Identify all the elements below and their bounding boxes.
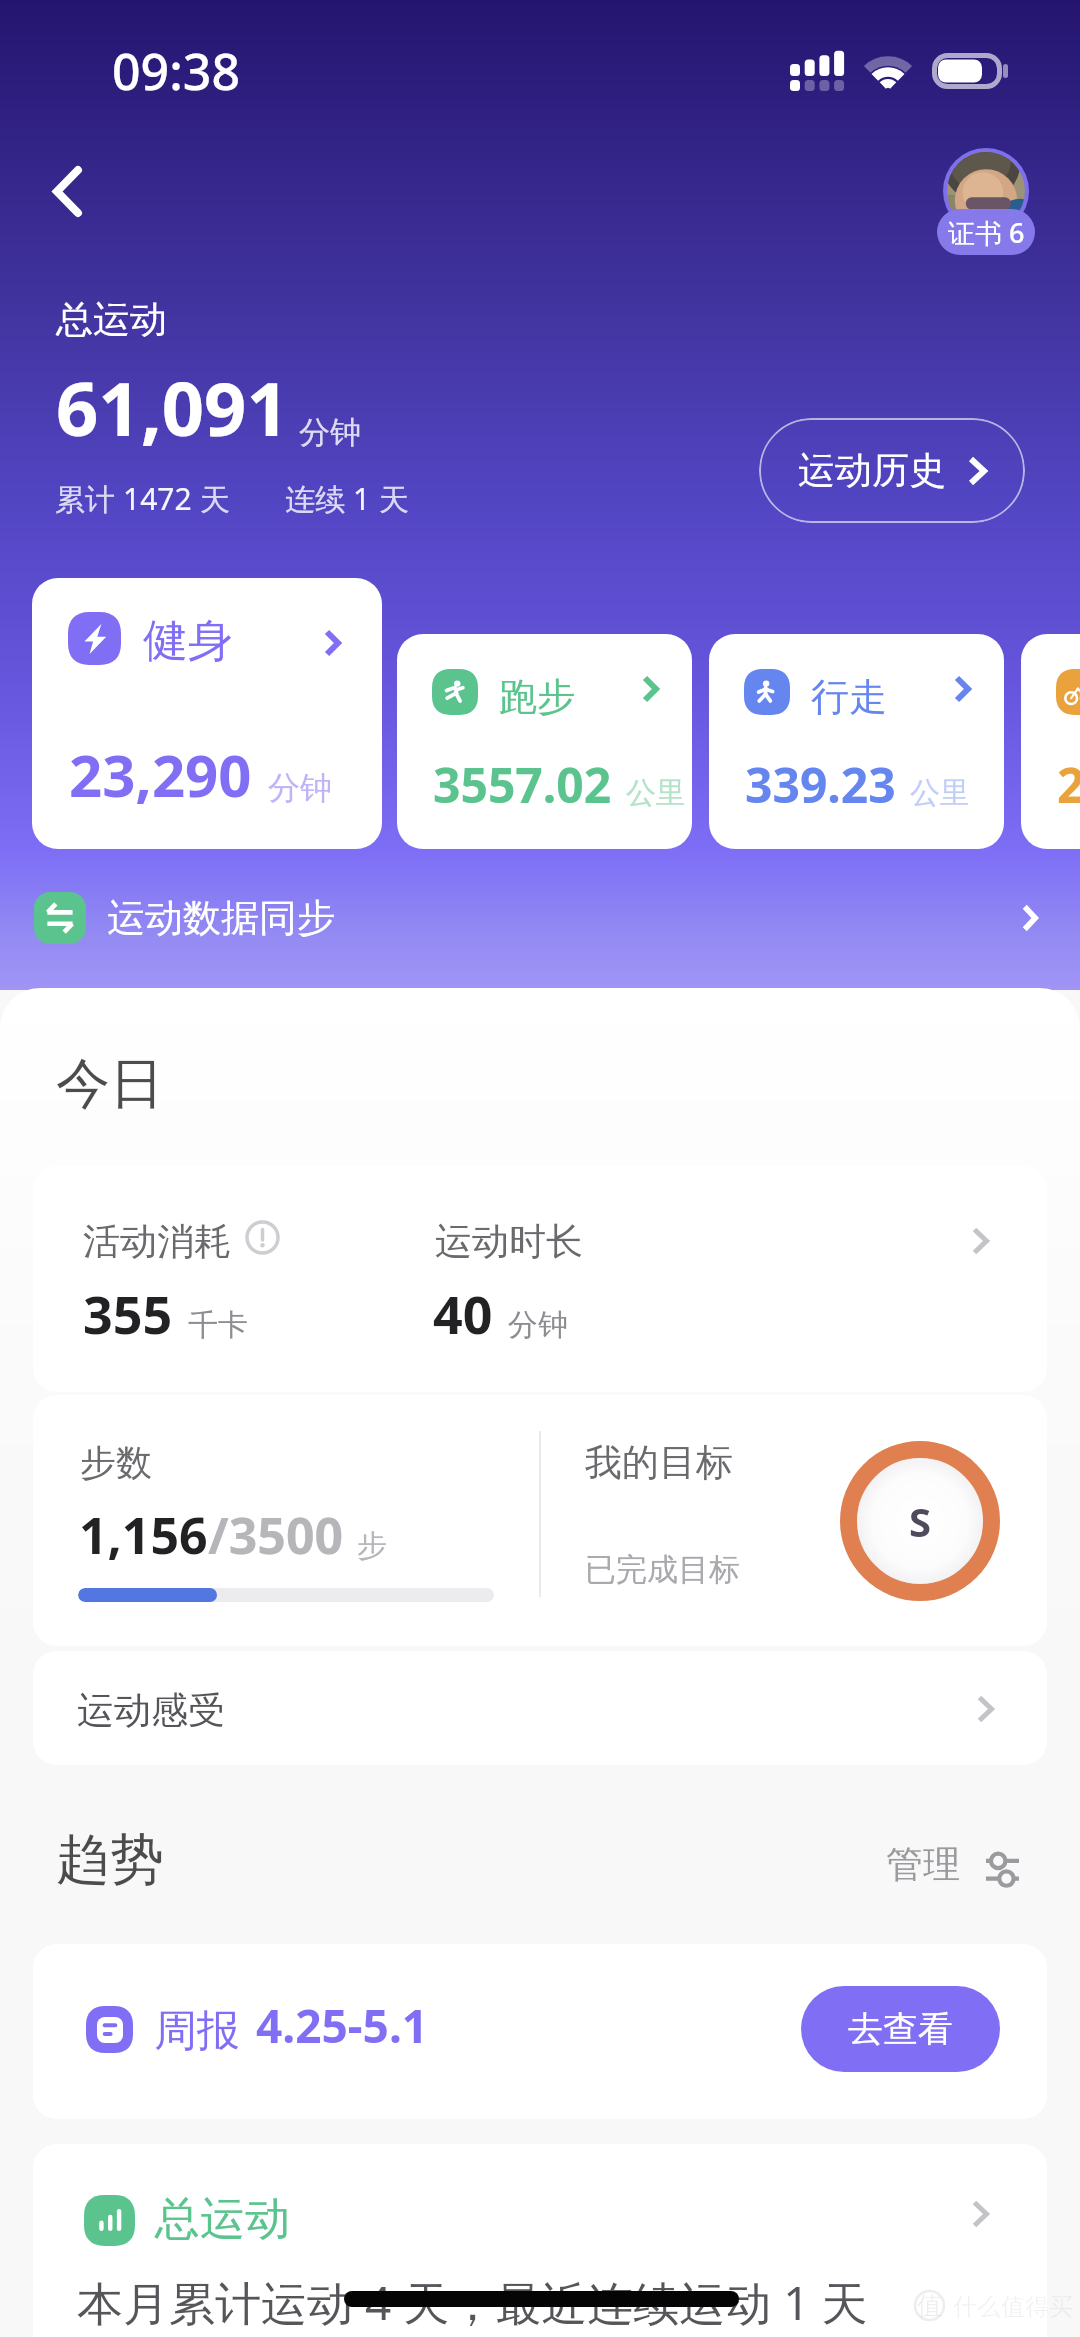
staticText: 去查看 — [848, 2007, 953, 2051]
staticText: 本月累计运动 4 天，最近连续运动 1 天 — [77, 2271, 868, 2334]
staticText: 1472 — [123, 478, 192, 519]
staticText: 什么值得买 — [953, 2292, 1073, 2322]
button[interactable]: 骑行 — [1021, 634, 1080, 849]
staticText: 1,156 — [79, 1501, 208, 1569]
staticText: 分钟 — [508, 1306, 568, 1344]
staticText: 活动消耗 — [83, 1218, 231, 1265]
staticText: 运动时长 — [435, 1218, 583, 1265]
staticText: 累计 — [55, 478, 123, 519]
button[interactable]: 去查看 — [801, 1986, 1000, 2072]
staticText: 天 — [192, 478, 230, 519]
staticText: 步 — [357, 1527, 387, 1565]
staticText: 运动数据同步 — [107, 894, 335, 942]
staticText: 分钟 — [299, 413, 361, 452]
button[interactable]: 周报 — [33, 1944, 1047, 2119]
staticText: 趋势 — [56, 1826, 164, 1894]
staticText: 证书 6 — [948, 214, 1025, 251]
staticText: 天 — [371, 478, 409, 519]
button[interactable]: 运动历史 — [759, 418, 1025, 523]
staticText: 行走 — [811, 673, 887, 721]
staticText: 61,091 — [56, 357, 289, 458]
button[interactable]: 活动消耗 — [33, 1166, 1047, 1392]
staticText: 355 — [83, 1278, 173, 1349]
staticText: 值 — [917, 2290, 942, 2321]
staticText: 公里 — [910, 774, 970, 812]
staticText: 运动历史 — [798, 447, 946, 494]
button[interactable]: 跑步 — [397, 634, 692, 849]
staticText: 我的目标 — [585, 1439, 733, 1486]
staticText: 连续 — [285, 478, 353, 519]
staticText: 09:38 — [112, 37, 240, 105]
staticText: 3557.02 — [433, 752, 612, 817]
staticText: 23,290 — [69, 735, 252, 814]
button[interactable]: 行走 — [709, 634, 1004, 849]
staticText: 339.23 — [745, 752, 896, 817]
staticText: 运动感受 — [77, 1687, 225, 1734]
staticText: 千卡 — [188, 1306, 248, 1344]
staticText: 212.4 — [1057, 752, 1080, 817]
button[interactable]: Back — [24, 148, 110, 234]
button[interactable]: Profile and certificates — [937, 148, 1035, 255]
staticText: 周报 — [154, 2004, 240, 2058]
staticText: 跑步 — [499, 673, 575, 721]
staticText: 总运动 — [56, 296, 167, 343]
staticText: 分钟 — [268, 768, 332, 808]
staticText: 已完成目标 — [585, 1550, 740, 1589]
staticText: /3500 — [208, 1501, 344, 1569]
staticText: 管理 — [886, 1841, 960, 1887]
button[interactable]: 健身 — [32, 578, 382, 849]
staticText: 1 — [353, 478, 371, 519]
staticText: 步数 — [80, 1440, 152, 1485]
staticText: 4.25-5.1 — [256, 1994, 429, 2057]
staticText: S — [909, 1494, 932, 1548]
button[interactable]: 步数 — [33, 1395, 1047, 1646]
staticText: 40 — [433, 1278, 493, 1349]
staticText: 公里 — [626, 774, 686, 812]
button[interactable]: 运动感受 — [33, 1651, 1047, 1765]
staticText: 今日 — [56, 1050, 164, 1118]
staticText: 总运动 — [155, 2191, 290, 2248]
button[interactable]: Manage trends — [876, 1841, 1028, 1887]
staticText: 健身 — [143, 613, 233, 670]
button[interactable]: 运动数据同步 — [0, 876, 1080, 960]
button[interactable]: 总运动 — [33, 2144, 1047, 2337]
